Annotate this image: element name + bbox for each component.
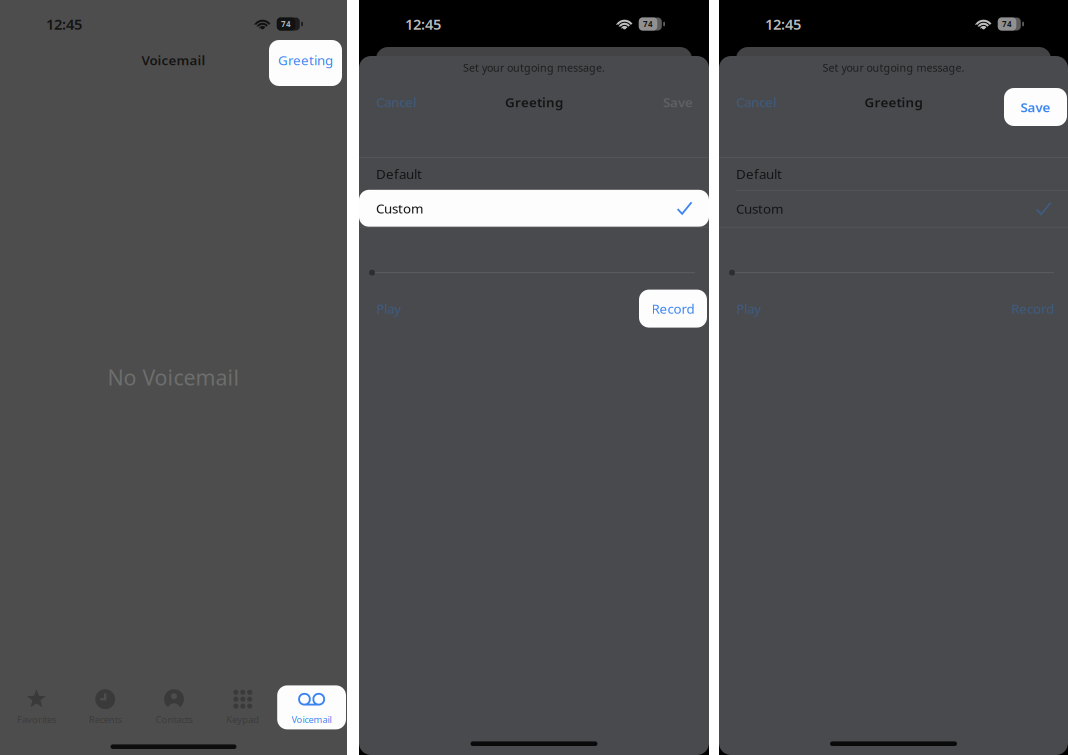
staticText: Set your outgoing message. [822,60,964,75]
staticText: No Voicemail [107,363,239,391]
staticText: Greeting [505,93,563,111]
button[interactable]: Custom [359,190,709,227]
staticText: Cancel [736,93,776,111]
staticText: Default [736,165,782,183]
staticText: 74 [281,19,291,29]
button[interactable]: Default [359,158,709,190]
button[interactable]: Record [639,290,707,328]
button[interactable]: Custom [719,191,1068,227]
staticText: Record [651,300,694,317]
staticText: Voicemail [141,51,205,69]
button[interactable]: Favorites [2,685,71,729]
staticText: Favorites [17,713,56,726]
button[interactable]: Greeting [269,37,342,83]
staticText: 12:45 [405,14,441,34]
button[interactable]: Save [663,83,693,121]
staticText: Voicemail [292,713,332,726]
staticText: 74 [643,19,653,29]
button[interactable]: Play [376,290,401,328]
button[interactable]: Cancel [736,83,776,121]
staticText: Greeting [864,93,922,111]
button[interactable]: Cancel [376,83,416,121]
staticText: 12:45 [46,14,82,34]
button[interactable]: Save [1004,83,1067,121]
staticText: Play [376,300,401,317]
staticText: 12:45 [765,14,801,34]
staticText: Keypad [226,713,259,726]
staticText: Save [1020,98,1050,116]
button[interactable]: Contacts [140,685,208,729]
button[interactable]: Voicemail [277,685,346,729]
button[interactable]: Recents [71,685,140,729]
staticText: Greeting [278,51,333,69]
button[interactable]: Keypad [208,685,277,729]
staticText: Contacts [155,713,192,726]
staticText: Custom [376,199,423,217]
staticText: Set your outgoing message. [463,60,605,75]
staticText: Save [663,93,693,111]
button[interactable]: Default [719,158,1068,190]
button[interactable]: Play [736,290,761,328]
staticText: Play [736,300,761,317]
staticText: Recents [89,713,122,726]
staticText: Custom [736,200,783,217]
staticText: 74 [1002,19,1012,29]
button[interactable]: Record [1011,290,1054,328]
staticText: Record [1011,300,1054,317]
staticText: Cancel [376,93,416,111]
staticText: Default [376,165,422,183]
